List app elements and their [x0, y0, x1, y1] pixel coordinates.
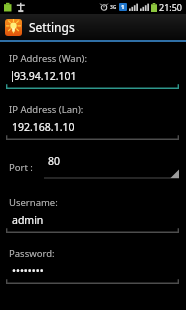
button[interactable]: Password: [0, 247, 186, 284]
staticText: 93.94.12.101 [14, 69, 77, 83]
button[interactable]: Port [0, 154, 186, 179]
staticText: 192.168.1.10 [12, 120, 75, 134]
staticText: 21:50 [159, 1, 183, 13]
button[interactable]: Username: [0, 196, 186, 233]
staticText: Username: [9, 196, 58, 209]
staticText: Port : [9, 161, 33, 174]
staticText: Settings [29, 19, 75, 35]
staticText: •••••••• [12, 264, 44, 278]
staticText: 3G [110, 4, 117, 11]
staticText: IP Address (Lan): [9, 103, 84, 116]
staticText: 80 [48, 154, 61, 168]
button[interactable]: IP Address (Wan): [0, 52, 186, 89]
button[interactable]: IP Address (Lan): [0, 103, 186, 140]
staticText: IP Address (Wan): [9, 52, 87, 65]
staticText: Password: [9, 247, 55, 260]
button[interactable]: Settings [0, 14, 186, 40]
staticText: admin [12, 213, 44, 227]
staticText: 1 [121, 3, 125, 11]
